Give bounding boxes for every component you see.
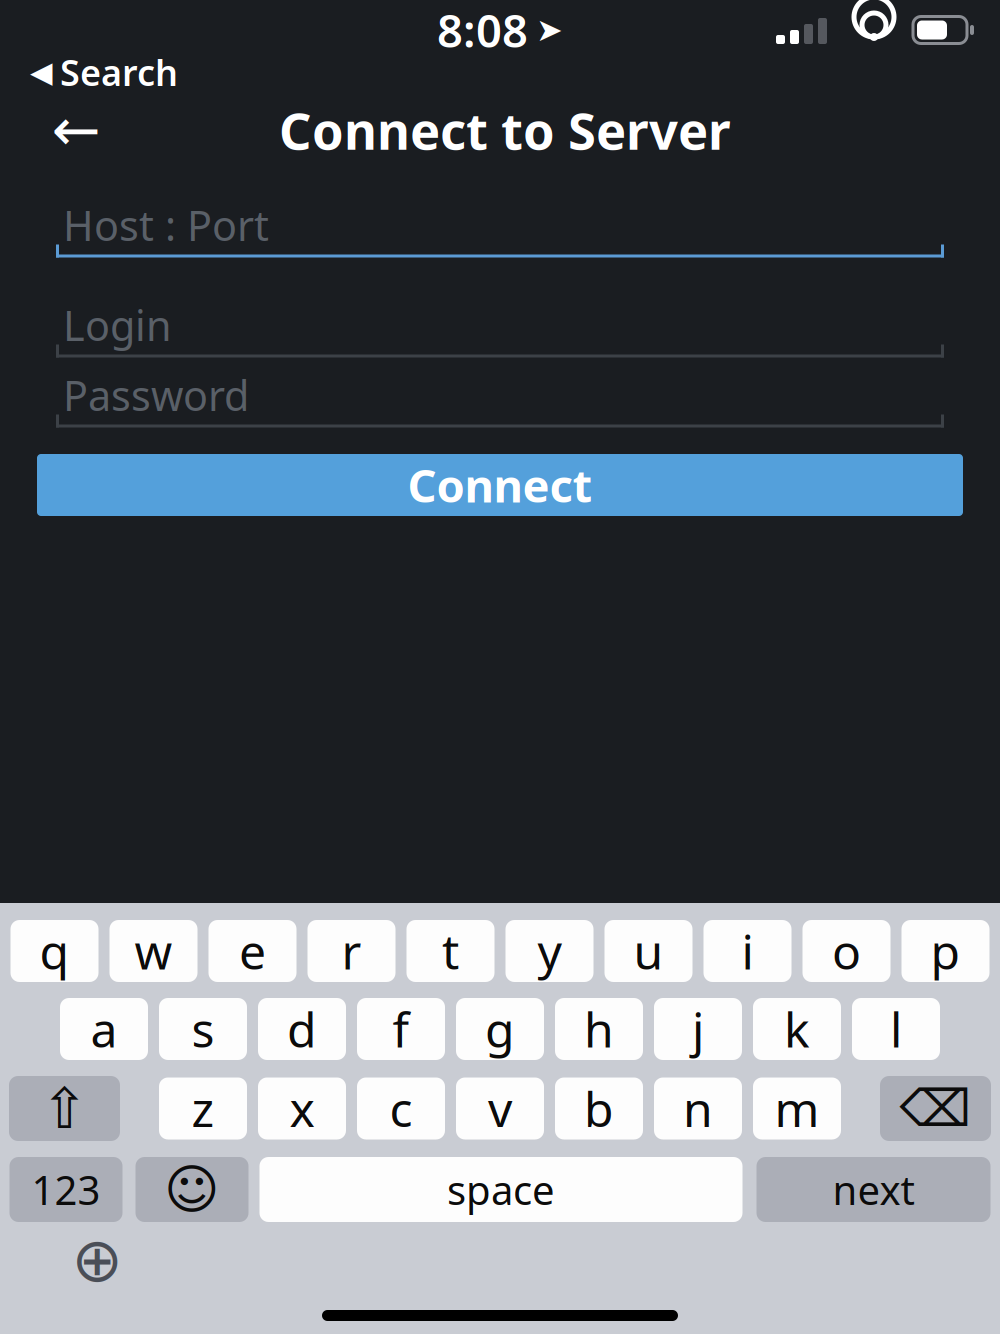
button[interactable]: z (159, 1077, 247, 1139)
button[interactable]: h (555, 998, 643, 1060)
button[interactable]: l (852, 998, 940, 1060)
staticText: ➤ (536, 12, 563, 48)
button[interactable]: g (456, 998, 544, 1060)
button[interactable]: m (753, 1077, 841, 1139)
staticText: ← (51, 97, 100, 163)
button[interactable]: p (901, 920, 989, 982)
button[interactable]: t (406, 920, 494, 982)
staticText: i (741, 919, 753, 983)
staticText: a (90, 997, 117, 1061)
button[interactable]: y (505, 920, 593, 982)
button[interactable]: r (307, 920, 395, 982)
button[interactable]: Shift (9, 1076, 120, 1141)
staticText: b (584, 1077, 614, 1140)
button[interactable]: u (604, 920, 692, 982)
staticText: Search (60, 48, 178, 96)
staticText: Host : Port (63, 198, 269, 252)
staticText: c (389, 1077, 412, 1140)
staticText: space (447, 1163, 555, 1216)
button[interactable]: x (258, 1077, 346, 1139)
staticText: ⊕ (71, 1225, 122, 1295)
staticText: Connect to Server (279, 96, 731, 164)
staticText: s (191, 997, 214, 1061)
button[interactable]: space (259, 1157, 742, 1222)
button[interactable]: b (555, 1077, 643, 1139)
staticText: u (633, 919, 663, 983)
button[interactable]: j (654, 998, 742, 1060)
staticText: e (239, 919, 266, 983)
button[interactable]: v (456, 1077, 544, 1139)
staticText: o (832, 919, 861, 983)
staticText: Login (63, 298, 172, 352)
button[interactable]: Emoji (135, 1157, 248, 1222)
button[interactable]: n (654, 1077, 742, 1139)
staticText: t (442, 919, 459, 983)
button[interactable]: e (208, 920, 296, 982)
staticText: m (774, 1077, 819, 1140)
staticText: next (832, 1163, 914, 1216)
button[interactable]: w (109, 920, 197, 982)
staticText: k (784, 997, 810, 1061)
staticText: ◀ (30, 55, 53, 89)
staticText: d (287, 997, 317, 1061)
staticText: q (39, 919, 69, 983)
button[interactable]: Delete (880, 1076, 991, 1141)
staticText: 8:08 (437, 0, 528, 60)
staticText: j (692, 997, 704, 1061)
staticText: f (392, 997, 409, 1061)
staticText: Password (63, 368, 249, 422)
staticText: Connect (407, 455, 592, 515)
button[interactable]: Next keyboard (62, 1230, 132, 1290)
staticText: ☺ (164, 1159, 220, 1220)
button[interactable]: c (357, 1077, 445, 1139)
staticText: g (485, 997, 515, 1061)
button[interactable]: a (60, 998, 148, 1060)
staticText: ⇧ (41, 1077, 88, 1140)
button[interactable]: i (703, 920, 791, 982)
staticText: 123 (31, 1163, 100, 1216)
button[interactable]: q (10, 920, 98, 982)
staticText: r (341, 919, 361, 983)
button[interactable]: next (756, 1157, 990, 1222)
staticText: n (683, 1077, 713, 1140)
button[interactable]: 123 (9, 1157, 122, 1222)
button[interactable]: Back (28, 92, 124, 168)
button[interactable]: f (357, 998, 445, 1060)
button[interactable]: Connect (37, 454, 963, 516)
staticText: z (191, 1077, 214, 1140)
button[interactable]: s (159, 998, 247, 1060)
staticText: p (930, 919, 960, 983)
staticText: w (134, 919, 172, 983)
staticText: l (890, 997, 902, 1061)
staticText: h (584, 997, 614, 1061)
button[interactable]: ◀ (0, 46, 178, 98)
staticText: x (289, 1077, 314, 1140)
button[interactable]: d (258, 998, 346, 1060)
staticText: y (537, 919, 561, 983)
button[interactable]: k (753, 998, 841, 1060)
staticText: v (488, 1077, 512, 1140)
staticText: ⌫ (899, 1080, 971, 1137)
button[interactable]: o (802, 920, 890, 982)
